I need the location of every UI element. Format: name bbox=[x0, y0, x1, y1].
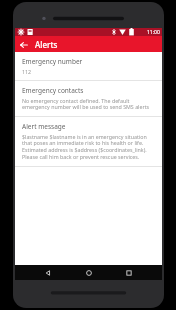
staticText: $lastname $lastname is in an emergency s… bbox=[22, 133, 155, 161]
staticText: Alert message bbox=[22, 122, 66, 131]
button[interactable]: Recent apps bbox=[122, 266, 136, 280]
staticText: 112 bbox=[22, 68, 32, 75]
staticText: 11:00 bbox=[147, 29, 160, 36]
staticText: Emergency contacts bbox=[22, 86, 84, 95]
button[interactable]: Home bbox=[82, 266, 96, 280]
button[interactable]: Back bbox=[41, 266, 55, 280]
button[interactable]: Alert message bbox=[15, 117, 162, 166]
staticText: No emergency contact defined. The defaul… bbox=[22, 97, 155, 111]
staticText: Emergency number bbox=[22, 57, 83, 66]
button[interactable]: Back bbox=[17, 38, 30, 51]
button[interactable]: Emergency contacts bbox=[15, 81, 162, 116]
staticText: Alerts bbox=[35, 39, 58, 50]
button[interactable]: Emergency number bbox=[15, 52, 162, 80]
